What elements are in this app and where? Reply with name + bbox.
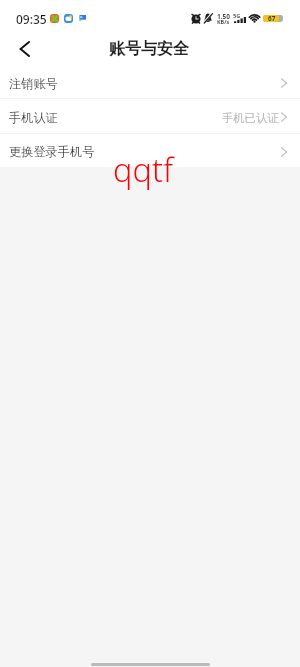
button[interactable]: 更换登录手机号 xyxy=(0,134,300,167)
staticText: 67 xyxy=(268,14,276,21)
staticText: 账号与安全 xyxy=(109,39,189,59)
staticText: 手机认证 xyxy=(9,110,58,125)
staticText: 1.50 xyxy=(217,12,230,21)
staticText: 5G xyxy=(233,12,241,20)
staticText: 09:35 xyxy=(16,11,47,27)
staticText: 更换登录手机号 xyxy=(9,144,95,159)
button[interactable]: 注销账号 xyxy=(0,66,300,98)
staticText: KB/s xyxy=(217,18,230,25)
staticText: 注销账号 xyxy=(9,76,58,91)
staticText: qqtf xyxy=(113,147,174,191)
staticText: 手机已认证 xyxy=(222,111,279,125)
button[interactable]: 手机认证 xyxy=(0,99,300,133)
button[interactable]: Back xyxy=(0,30,48,66)
